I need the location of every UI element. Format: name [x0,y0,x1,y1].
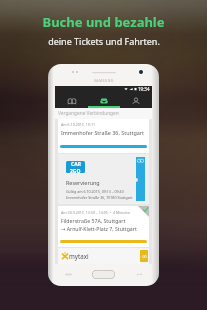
button[interactable]: Am 6.10.2015, 19:11 [55,119,152,153]
staticText: Vergangene Verbindungen [58,110,119,117]
staticText: mytaxi [69,252,89,260]
staticText: Am 6.10.2015, 19:11 [61,122,95,127]
staticText: Reservierung [66,179,100,186]
staticText: Immenhofer Straße 36, Stuttgart [61,129,144,136]
staticText: Filderstraße 57A, Stuttgart [61,217,126,224]
button[interactable]: Am 30.9.2015, 13:50 – 14:05 • 4 Minuten [55,206,152,247]
staticText: Am 30.9.2015, 13:50 – 14:05 • 4 Minuten [61,210,131,215]
button[interactable]: Tickets [88,92,120,108]
staticText: 19:34 [138,86,150,92]
staticText: Buche und bezahle [42,13,165,31]
staticText: Gültig am 6.10.2015, 09:13 – 09:43 [66,189,124,194]
button[interactable]: Profile [120,92,152,108]
staticText: SAMSUNG [94,78,114,83]
staticText: Immenhofer Straße 36, 70180 Stuttgart [66,195,133,200]
staticText: → Arnulf-Klett-Platz 7, Stuttgart [61,225,137,232]
button[interactable]: Map [55,92,88,108]
staticText: 2GO [70,168,81,173]
staticText: deine Tickets und Fahrten. [48,35,160,47]
button[interactable]: mytaxi [55,248,152,264]
staticText: CAR [71,161,81,168]
button[interactable]: CAR [55,154,152,204]
